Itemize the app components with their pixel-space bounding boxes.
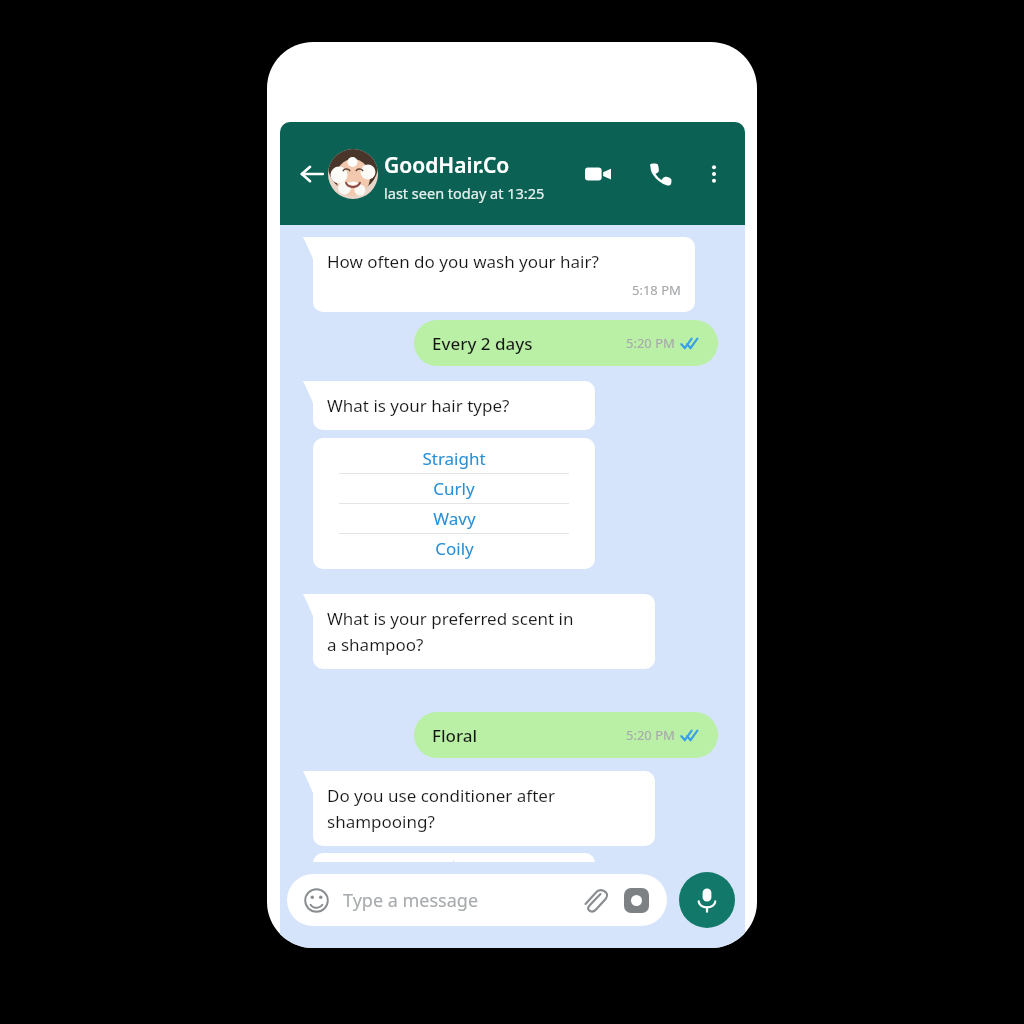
staticText: What is your preferred scent in <box>327 607 574 630</box>
button[interactable]: Coily <box>313 534 595 563</box>
staticText: Curly <box>433 477 475 500</box>
staticText: What is your hair type? <box>327 394 510 417</box>
staticText: Straight <box>422 447 486 470</box>
staticText: Wavy <box>433 507 476 530</box>
button[interactable]: More options <box>692 152 736 196</box>
staticText: last seen today at 13:25 <box>384 183 545 203</box>
button[interactable]: Camera <box>619 883 653 917</box>
staticText: shampooing? <box>327 810 435 833</box>
staticText: No <box>513 866 537 889</box>
button[interactable]: Attach <box>577 883 611 917</box>
button[interactable]: Emoji <box>287 874 667 926</box>
staticText: Every 2 days <box>432 332 533 355</box>
button[interactable]: Emoji <box>301 885 331 915</box>
staticText: Coily <box>435 537 474 560</box>
staticText: Yes <box>370 866 397 889</box>
staticText: 5:18 PM <box>632 281 681 299</box>
button[interactable]: Voice message <box>679 872 735 928</box>
button[interactable]: Wavy <box>313 504 595 533</box>
staticText: a shampoo? <box>327 633 424 656</box>
button[interactable]: Video call <box>576 152 620 196</box>
button[interactable]: Straight <box>313 444 595 473</box>
button[interactable]: Back <box>288 150 336 198</box>
button[interactable]: GoodHair.Co <box>384 151 545 203</box>
button[interactable]: How often do you wash your hair? <box>303 237 695 312</box>
button[interactable]: Floral <box>414 712 718 758</box>
button[interactable]: What is your hair type? <box>303 381 595 430</box>
staticText: 5:20 PM <box>626 334 675 352</box>
button[interactable]: Yes <box>313 853 453 901</box>
button[interactable]: Every 2 days <box>414 320 718 366</box>
staticText: Type a message <box>343 888 479 913</box>
staticText: 5:20 PM <box>626 726 675 744</box>
button[interactable]: What is your preferred scent in <box>303 594 655 669</box>
button[interactable]: Do you use conditioner after <box>303 771 655 846</box>
staticText: How often do you wash your hair? <box>327 250 599 273</box>
staticText: Floral <box>432 724 478 747</box>
staticText: Do you use conditioner after <box>327 784 555 807</box>
staticText: GoodHair.Co <box>384 151 510 180</box>
button[interactable]: No <box>454 853 595 901</box>
button[interactable]: Call <box>638 152 682 196</box>
button[interactable]: Curly <box>313 474 595 503</box>
button[interactable]: Profile photo <box>328 149 378 199</box>
